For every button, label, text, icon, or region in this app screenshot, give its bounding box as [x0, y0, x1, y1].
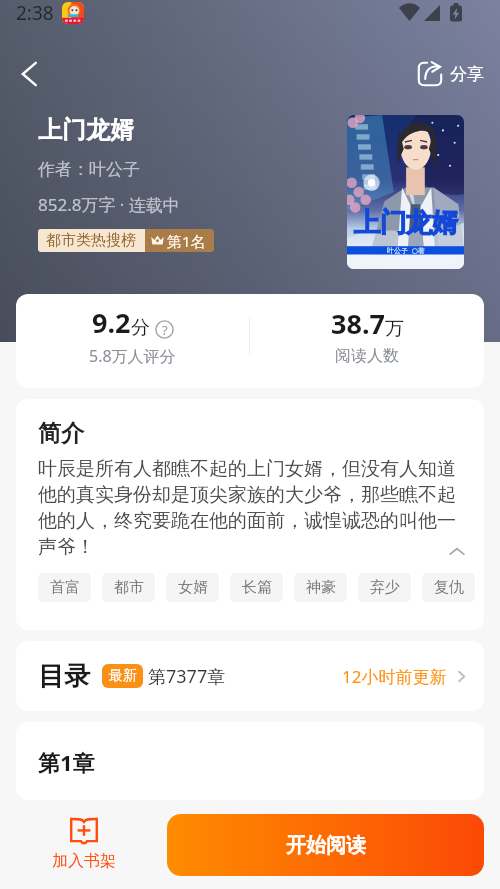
- button[interactable]: 都市: [102, 573, 155, 602]
- button[interactable]: 神豪: [294, 573, 347, 602]
- button[interactable]: 女婿: [166, 573, 219, 602]
- staticText: 9.2: [92, 304, 131, 341]
- staticText: 复仇: [434, 578, 464, 597]
- staticText: 5.8万人评分: [89, 345, 176, 367]
- staticText: 目录: [38, 660, 90, 693]
- staticText: ?: [162, 321, 168, 339]
- staticText: 852.8万字 · 连载中: [38, 193, 180, 216]
- button[interactable]: 复仇: [422, 573, 475, 602]
- button[interactable]: 加入书架: [52, 817, 116, 871]
- staticText: 加入书架: [52, 851, 116, 871]
- staticText: 12小时前更新: [342, 665, 447, 688]
- staticText: 都市类热搜榜: [46, 231, 136, 250]
- staticText: 第7377章: [148, 664, 226, 689]
- button[interactable]: Collapse: [444, 539, 470, 565]
- staticText: 神豪: [306, 578, 336, 597]
- staticText: 都市: [114, 578, 144, 597]
- staticText: 长篇: [242, 578, 272, 597]
- staticText: 万: [385, 317, 404, 341]
- staticText: 开始阅读: [286, 833, 366, 858]
- staticText: 38.7: [331, 305, 385, 342]
- button[interactable]: 弃少: [358, 573, 411, 602]
- button[interactable]: 都市类热搜榜: [38, 229, 214, 252]
- staticText: 女婿: [178, 578, 208, 597]
- button[interactable]: 首富: [38, 573, 91, 602]
- staticText: 第1章: [38, 747, 95, 777]
- staticText: 分: [131, 316, 150, 340]
- staticText: 叶公子 ○著: [387, 246, 425, 256]
- button[interactable]: 分享: [416, 60, 484, 88]
- staticText: 最新: [109, 667, 137, 685]
- staticText: 弃少: [370, 578, 400, 597]
- staticText: 上门龙婿: [38, 115, 134, 145]
- staticText: 首富: [50, 578, 80, 597]
- staticText: 简介: [38, 419, 84, 448]
- button[interactable]: 第1章: [16, 722, 484, 800]
- staticText: 作者：叶公子: [38, 159, 140, 180]
- button[interactable]: 开始阅读: [167, 814, 484, 876]
- staticText: 阅读人数: [335, 346, 399, 366]
- staticText: 2:38: [16, 0, 54, 26]
- button[interactable]: 目录: [16, 641, 484, 711]
- staticText: 第1名: [167, 231, 206, 251]
- staticText: 叶辰是所有人都瞧不起的上门女婿，但没有人知道他的真实身份却是顶尖家族的大少爷，那…: [38, 457, 462, 559]
- staticText: 上门龙婿: [354, 206, 458, 240]
- button[interactable]: Back: [9, 54, 49, 94]
- button[interactable]: 长篇: [230, 573, 283, 602]
- staticText: 分享: [450, 64, 484, 85]
